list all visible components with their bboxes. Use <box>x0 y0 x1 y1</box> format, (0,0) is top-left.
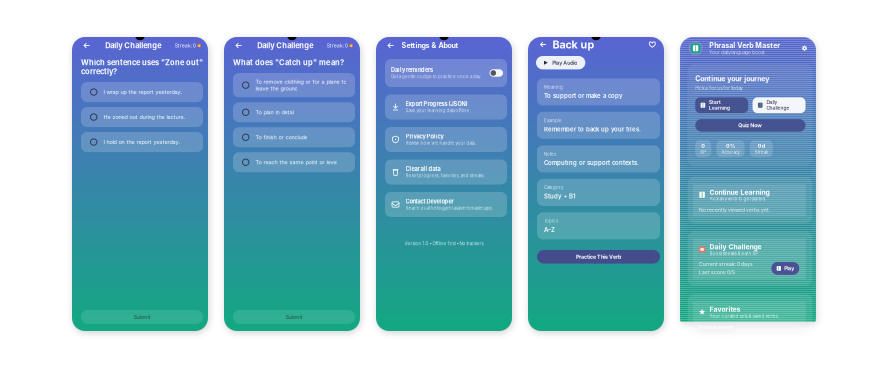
staticText: Computing or support contexts. <box>544 159 639 166</box>
staticText: Phrasal Verb Master <box>709 41 780 50</box>
staticText: Submit <box>285 314 302 320</box>
staticText: Privacy Policy <box>405 133 443 140</box>
staticText: To remove clothing or for a plane to lea… <box>255 78 346 92</box>
staticText: He zoned out during the lecture. <box>103 114 185 120</box>
button[interactable]: Back <box>82 41 92 50</box>
staticText: Streak: 0 <box>175 42 196 49</box>
staticText: Clear all data <box>405 166 440 172</box>
button[interactable]: Play <box>771 262 799 275</box>
staticText: Study • B1 <box>544 193 576 200</box>
button[interactable]: Settings <box>800 44 809 53</box>
button[interactable]: I hold on the report yesterday. <box>81 132 203 152</box>
staticText: 0% <box>726 143 735 149</box>
staticText: What does "Catch up" mean? <box>233 58 344 67</box>
staticText: Example <box>544 118 562 123</box>
staticText: Meaning <box>544 84 563 90</box>
staticText: Your daily language boost <box>709 50 764 55</box>
button[interactable]: Play Audio <box>536 56 585 69</box>
button[interactable]: Daily reminders toggle <box>489 69 503 77</box>
staticText: Pick any verb to get started. <box>709 196 766 202</box>
staticText: Your curated sets & saved verbs. <box>709 313 778 319</box>
staticText: Daily reminders <box>391 67 433 73</box>
button[interactable]: Privacy Policy <box>385 127 507 152</box>
staticText: Quiz Now <box>738 122 762 129</box>
staticText: Streak <box>755 149 768 155</box>
button[interactable]: I wrap up the report yesterday. <box>81 82 203 102</box>
staticText: To reach the same point or level <box>255 159 337 166</box>
staticText: 0 verbs saved <box>699 324 733 330</box>
staticText: Save your learning data offline. <box>405 108 470 113</box>
button[interactable]: Submit <box>81 310 203 324</box>
staticText: Submit <box>133 314 150 320</box>
button[interactable]: To remove clothing or for a plane to lea… <box>233 73 355 97</box>
staticText: Daily Challenge <box>105 41 161 50</box>
button[interactable]: Practice This Verb <box>537 250 660 264</box>
button[interactable]: Start Learning <box>695 97 748 113</box>
button[interactable]: To reach the same point or level <box>233 152 355 172</box>
staticText: Notes <box>544 151 556 157</box>
button[interactable]: Submit <box>233 310 355 324</box>
staticText: Export Progress (JSON) <box>405 101 467 107</box>
staticText: Daily Challenge <box>257 41 313 50</box>
staticText: Continue your journey <box>695 74 769 83</box>
staticText: Topics <box>544 218 558 224</box>
staticText: To support or make a copy <box>544 92 623 99</box>
button[interactable]: Clear all data <box>385 159 507 184</box>
button[interactable]: Export Progress (JSON) <box>385 94 507 119</box>
button[interactable]: Daily Challenge <box>752 97 805 113</box>
button[interactable]: Back <box>539 40 547 49</box>
staticText: Current streak: 0 days <box>699 261 753 267</box>
staticText: Version 1.0 • Offline first • No tracker… <box>404 241 483 246</box>
staticText: Settings & About <box>402 41 459 50</box>
staticText: I wrap up the report yesterday. <box>103 89 182 95</box>
staticText: Streak: 0 <box>327 42 348 49</box>
staticText: Which sentence uses "Zone out" correctly… <box>81 58 203 76</box>
button[interactable]: To finish or conclude <box>233 127 355 147</box>
staticText: Reach us at hello@phrasalverbmaster.app <box>405 205 492 211</box>
staticText: Play Audio <box>552 59 577 66</box>
staticText: Boost streaks & earn XP <box>709 251 758 256</box>
staticText: Accuracy <box>721 149 739 155</box>
button[interactable]: Back <box>386 41 396 50</box>
staticText: Pick a focus for today <box>695 85 743 91</box>
staticText: A–Z <box>544 226 555 233</box>
staticText: Review how we handle your data. <box>405 140 475 146</box>
staticText: No recently viewed verbs yet. <box>699 207 770 213</box>
staticText: Remember to back up your files. <box>544 126 641 133</box>
staticText: Favorites <box>709 305 740 313</box>
staticText: Daily Challenge <box>766 100 789 111</box>
staticText: To plan in detail <box>255 109 294 116</box>
staticText: I hold on the report yesterday. <box>103 139 180 145</box>
staticText: To finish or conclude <box>255 134 307 141</box>
button[interactable]: To plan in detail <box>233 102 355 122</box>
staticText: Get a gentle nudge to practice once a da… <box>391 74 481 79</box>
button[interactable]: Contact Developer <box>385 192 507 217</box>
staticText: Contact Developer <box>405 198 453 205</box>
staticText: Start Learning <box>709 100 730 111</box>
button[interactable]: Favorite <box>648 40 657 49</box>
staticText: Practice This Verb <box>576 253 621 260</box>
button[interactable]: Back <box>234 41 244 50</box>
button[interactable]: He zoned out during the lecture. <box>81 107 203 127</box>
staticText: Back up <box>552 38 594 51</box>
button[interactable]: Quiz Now <box>695 119 805 132</box>
staticText: Category <box>544 185 563 190</box>
staticText: Reset progress, favorites, and streaks. <box>405 173 484 178</box>
staticText: Daily Challenge <box>709 243 761 251</box>
staticText: Play <box>784 265 794 271</box>
staticText: Continue Learning <box>709 188 769 196</box>
staticText: 0 <box>701 143 705 149</box>
staticText: Last score: 0/5 <box>699 270 735 276</box>
staticText: 0d <box>758 143 765 149</box>
staticText: XP <box>700 149 706 155</box>
